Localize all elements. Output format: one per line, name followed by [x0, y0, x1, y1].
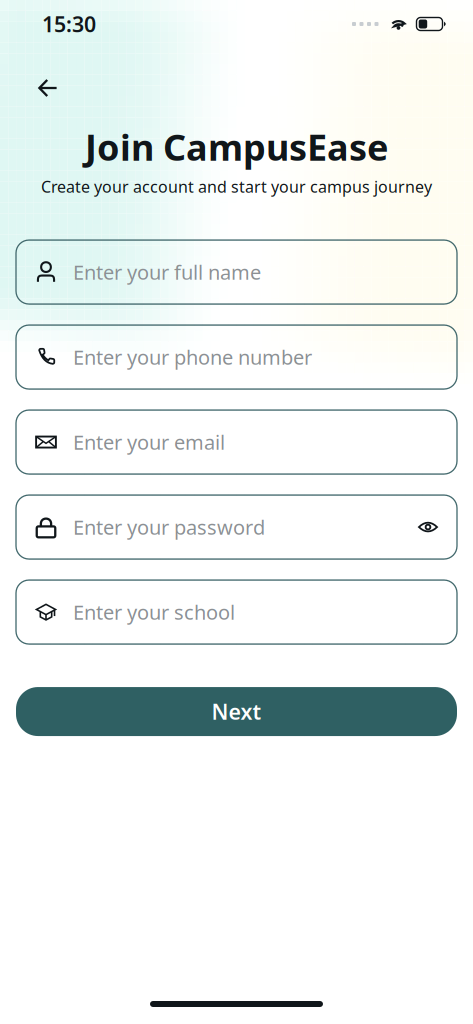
button[interactable]: Back: [26, 66, 70, 110]
staticText: Enter your school: [73, 599, 235, 625]
staticText: Create your account and start your campu…: [41, 176, 432, 197]
button[interactable]: Enter your password: [16, 495, 457, 559]
staticText: Enter your full name: [73, 259, 261, 285]
button[interactable]: Enter your email: [16, 410, 457, 474]
button[interactable]: Next: [16, 687, 457, 736]
staticText: Enter your phone number: [73, 344, 312, 370]
staticText: 15:30: [42, 10, 96, 38]
staticText: Enter your password: [73, 514, 265, 540]
button[interactable]: Enter your school: [16, 580, 457, 644]
button[interactable]: Enter your phone number: [16, 325, 457, 389]
staticText: Enter your email: [73, 429, 225, 455]
staticText: Join CampusEase: [85, 123, 388, 171]
button[interactable]: Enter your full name: [16, 240, 457, 304]
staticText: Next: [211, 697, 261, 726]
